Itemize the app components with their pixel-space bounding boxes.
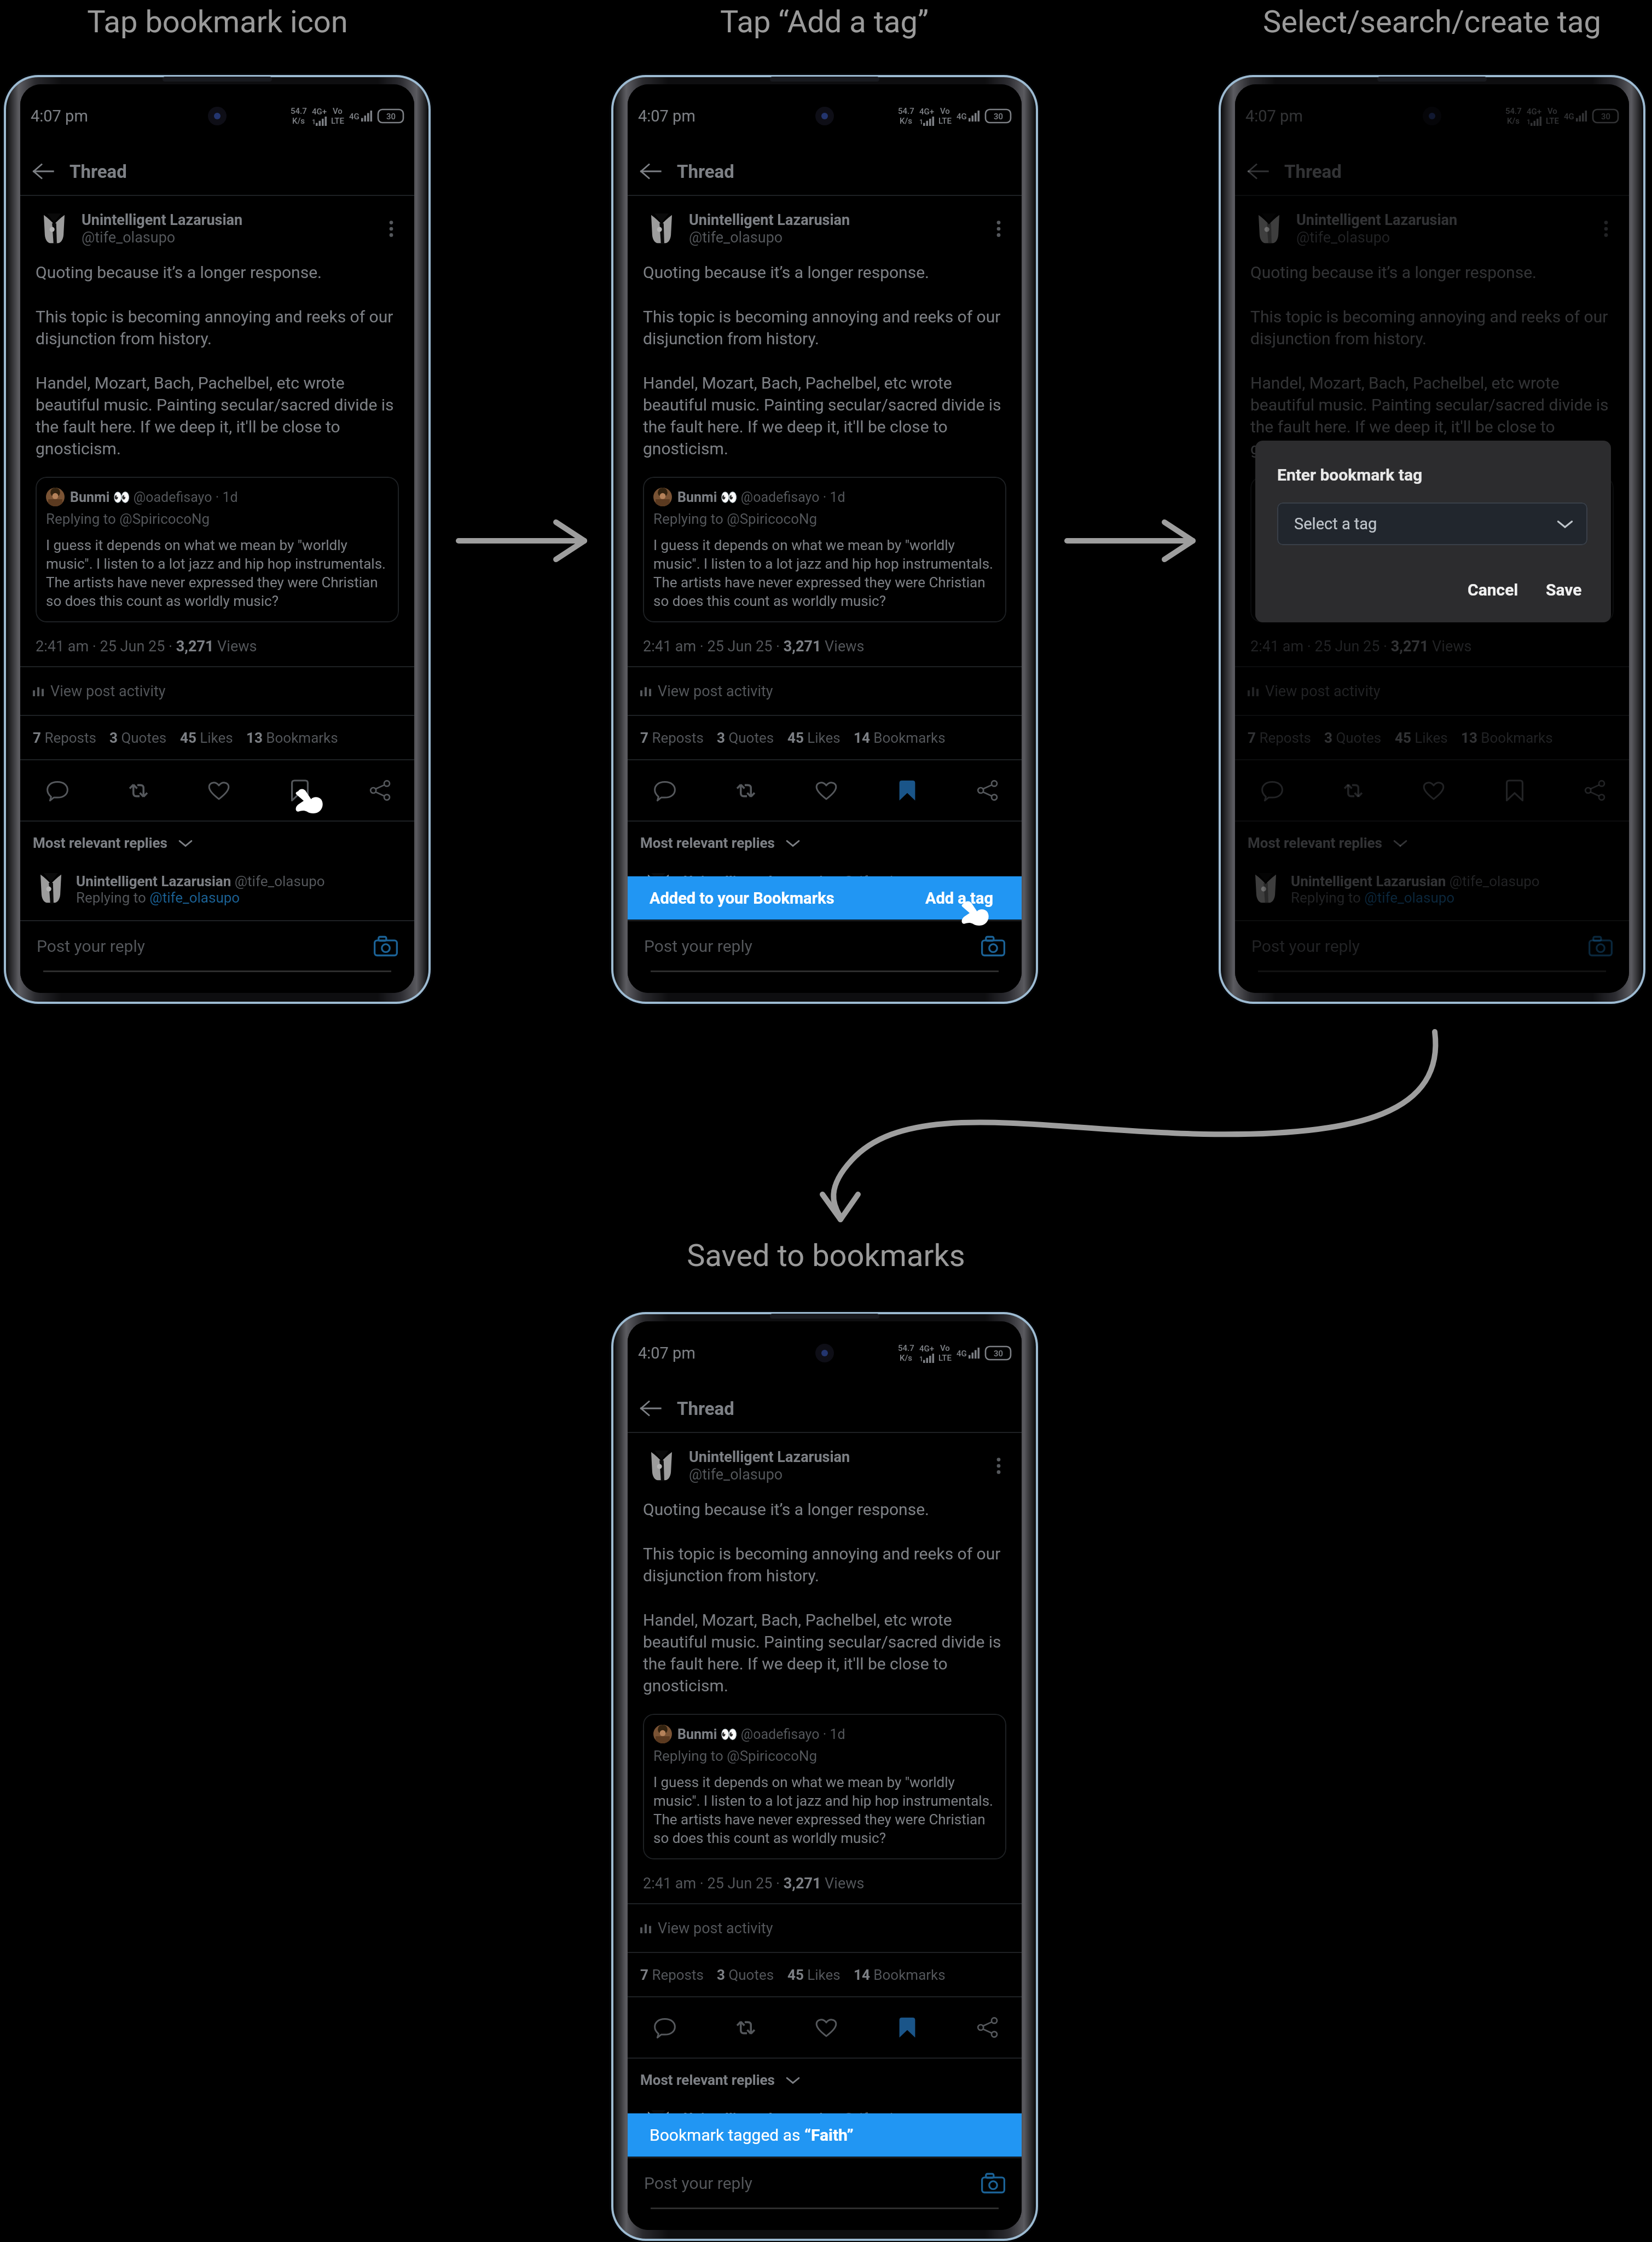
staticText: Tap “Add a tag”	[720, 4, 929, 40]
staticText: 30	[994, 112, 1003, 121]
button[interactable]: View post activity	[1235, 667, 1629, 715]
staticText: 2:41 am · 25 Jun 25 · 3,271 Views	[1250, 638, 1472, 655]
staticText: 4G+	[919, 107, 935, 117]
button[interactable]: Like	[804, 2002, 848, 2053]
staticText: K/s	[900, 1353, 913, 1363]
button[interactable]: Most relevant replies	[628, 822, 1022, 864]
button[interactable]: Add photo	[370, 931, 401, 961]
staticText: 2:41 am · 25 Jun 25 · 3,271 Views	[36, 638, 257, 655]
button[interactable]: View post activity	[20, 667, 414, 715]
staticText: 7 Reposts	[640, 1967, 704, 1983]
staticText: 4G	[957, 112, 967, 122]
button[interactable]: Bunmi 👀 @oadefisayo · 1d	[643, 477, 1006, 622]
button[interactable]: Unintelligent Lazarusian @tife_olasupo	[628, 864, 1022, 906]
staticText: K/s	[900, 116, 913, 126]
staticText: LTE	[938, 116, 952, 126]
button[interactable]: Share	[966, 765, 1010, 816]
button[interactable]: Share	[966, 2002, 1010, 2053]
button[interactable]: Unintelligent Lazarusian @tife_olasupo	[1235, 864, 1629, 906]
staticText: Added to your Bookmarks	[650, 889, 925, 908]
button[interactable]: Back	[635, 156, 666, 187]
button[interactable]: Like	[804, 765, 848, 816]
button[interactable]: Most relevant replies	[20, 822, 414, 864]
staticText: Replying to @SpiricocoNg	[1261, 511, 1425, 527]
button[interactable]: View post activity	[628, 1904, 1022, 1952]
staticText: 4G	[349, 112, 360, 122]
button[interactable]: Most relevant replies	[1235, 822, 1629, 864]
button[interactable]: Back	[28, 156, 59, 187]
button[interactable]: Unintelligent Lazarusian	[628, 1433, 1022, 1483]
staticText: Handel, Mozart, Bach, Pachelbel, etc wro…	[643, 1610, 1006, 1695]
button[interactable]: View post activity	[628, 667, 1022, 715]
button[interactable]: Post your reply	[628, 921, 1022, 970]
button[interactable]: More options	[1593, 216, 1619, 242]
button[interactable]: Bookmark	[885, 2002, 929, 2053]
button[interactable]: Back	[1243, 156, 1273, 187]
button[interactable]: Bunmi 👀 @oadefisayo · 1d	[643, 1714, 1006, 1859]
button[interactable]: Like	[1412, 765, 1456, 816]
staticText: Replying to @tife_olasupo	[683, 2127, 848, 2143]
button[interactable]: Bookmark	[1493, 765, 1537, 816]
button[interactable]: Reply	[643, 765, 687, 816]
button[interactable]: Unintelligent Lazarusian	[628, 196, 1022, 246]
staticText: 7 Reposts	[33, 730, 96, 746]
staticText: Tap bookmark icon	[87, 4, 348, 40]
button[interactable]: Reply	[36, 765, 79, 816]
staticText: 4:07 pm	[638, 1344, 695, 1362]
staticText: Unintelligent Lazarusian	[82, 211, 243, 229]
button[interactable]: Bookmark tagged as “Faith”	[628, 2113, 1022, 2157]
staticText: 30	[994, 1349, 1003, 1358]
button[interactable]: Select a tag	[1277, 502, 1587, 545]
staticText: View post activity	[50, 683, 166, 700]
button[interactable]: More options	[378, 216, 404, 242]
button[interactable]: Add photo	[978, 2168, 1008, 2198]
button[interactable]: Share	[1573, 765, 1617, 816]
button[interactable]: Post your reply	[1235, 921, 1629, 970]
button[interactable]: Like	[197, 765, 241, 816]
button[interactable]: Cancel	[1461, 575, 1525, 605]
button[interactable]: Repost	[117, 765, 160, 816]
button[interactable]: Bookmark	[885, 765, 929, 816]
button[interactable]: Repost	[724, 765, 768, 816]
staticText: @tife_olasupo	[1296, 229, 1390, 246]
staticText: This topic is becoming annoying and reek…	[643, 307, 1006, 348]
button[interactable]: More options	[986, 1453, 1012, 1479]
button[interactable]: Bunmi 👀 @oadefisayo · 1d	[1250, 477, 1614, 622]
staticText: 1	[919, 118, 923, 126]
button[interactable]: Post your reply	[628, 2158, 1022, 2208]
staticText: 7 Reposts	[1248, 730, 1311, 746]
staticText: Vo	[1547, 106, 1557, 116]
button[interactable]: Unintelligent Lazarusian @tife_olasupo	[628, 2101, 1022, 2143]
button[interactable]: Most relevant replies	[628, 2059, 1022, 2101]
staticText: Unintelligent Lazarusian	[689, 1448, 850, 1466]
button[interactable]: Share	[358, 765, 402, 816]
staticText: Bunmi 👀 @oadefisayo · 1d	[1285, 489, 1453, 505]
button[interactable]: Save	[1540, 575, 1587, 605]
staticText: @tife_olasupo	[689, 229, 783, 246]
button[interactable]: More options	[986, 216, 1012, 242]
button[interactable]: Bookmark	[278, 765, 322, 816]
staticText: Vo	[940, 1343, 950, 1353]
button[interactable]: Add photo	[978, 931, 1008, 961]
staticText: Handel, Mozart, Bach, Pachelbel, etc wro…	[36, 373, 399, 458]
staticText: This topic is becoming annoying and reek…	[1250, 307, 1614, 348]
button[interactable]: Reply	[643, 2002, 687, 2053]
button[interactable]: Unintelligent Lazarusian	[20, 196, 414, 246]
staticText: LTE	[331, 116, 344, 126]
button[interactable]: Repost	[724, 2002, 768, 2053]
button[interactable]: Unintelligent Lazarusian @tife_olasupo	[20, 864, 414, 906]
button[interactable]: Bunmi 👀 @oadefisayo · 1d	[36, 477, 399, 622]
button[interactable]: Repost	[1331, 765, 1375, 816]
button[interactable]: Back	[635, 1393, 666, 1424]
staticText: Bunmi 👀 @oadefisayo · 1d	[677, 1726, 845, 1742]
staticText: Bunmi 👀 @oadefisayo · 1d	[70, 489, 238, 505]
staticText: 14 Bookmarks	[854, 730, 946, 746]
staticText: Unintelligent Lazarusian	[1296, 211, 1458, 229]
button[interactable]: Unintelligent Lazarusian	[1235, 196, 1629, 246]
staticText: Bunmi 👀 @oadefisayo · 1d	[677, 489, 845, 505]
button[interactable]: Reply	[1250, 765, 1294, 816]
button[interactable]: Added to your Bookmarks	[628, 876, 1022, 920]
button[interactable]: Add photo	[1585, 931, 1616, 961]
button[interactable]: Post your reply	[20, 921, 414, 970]
button[interactable]: Add a tag	[925, 889, 993, 908]
